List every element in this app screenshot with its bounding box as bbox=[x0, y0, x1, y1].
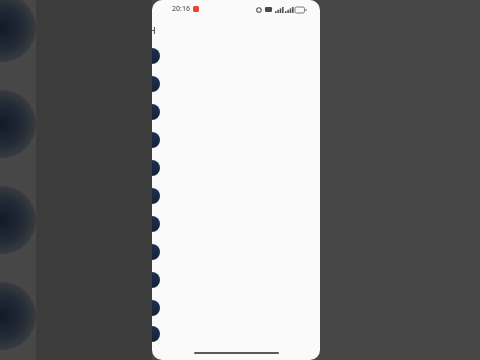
button[interactable]: Conversation 7 bbox=[152, 210, 320, 238]
button[interactable]: Conversation 2 bbox=[152, 70, 320, 98]
button[interactable]: Home gesture bar bbox=[194, 352, 279, 354]
button[interactable]: Conversation 8 bbox=[152, 238, 320, 266]
button[interactable]: Conversation 4 bbox=[152, 126, 320, 154]
button[interactable]: Conversation 3 bbox=[152, 98, 320, 126]
button[interactable]: Conversation 5 bbox=[152, 154, 320, 182]
button[interactable]: Conversation 9 bbox=[152, 266, 320, 294]
staticText: H bbox=[152, 24, 156, 36]
staticText: 20:16 bbox=[172, 4, 190, 14]
button[interactable]: Conversation 11 bbox=[152, 322, 320, 346]
button[interactable]: Conversation 1 bbox=[152, 42, 320, 70]
button[interactable]: Conversation 10 bbox=[152, 294, 320, 322]
button[interactable]: Conversation 6 bbox=[152, 182, 320, 210]
